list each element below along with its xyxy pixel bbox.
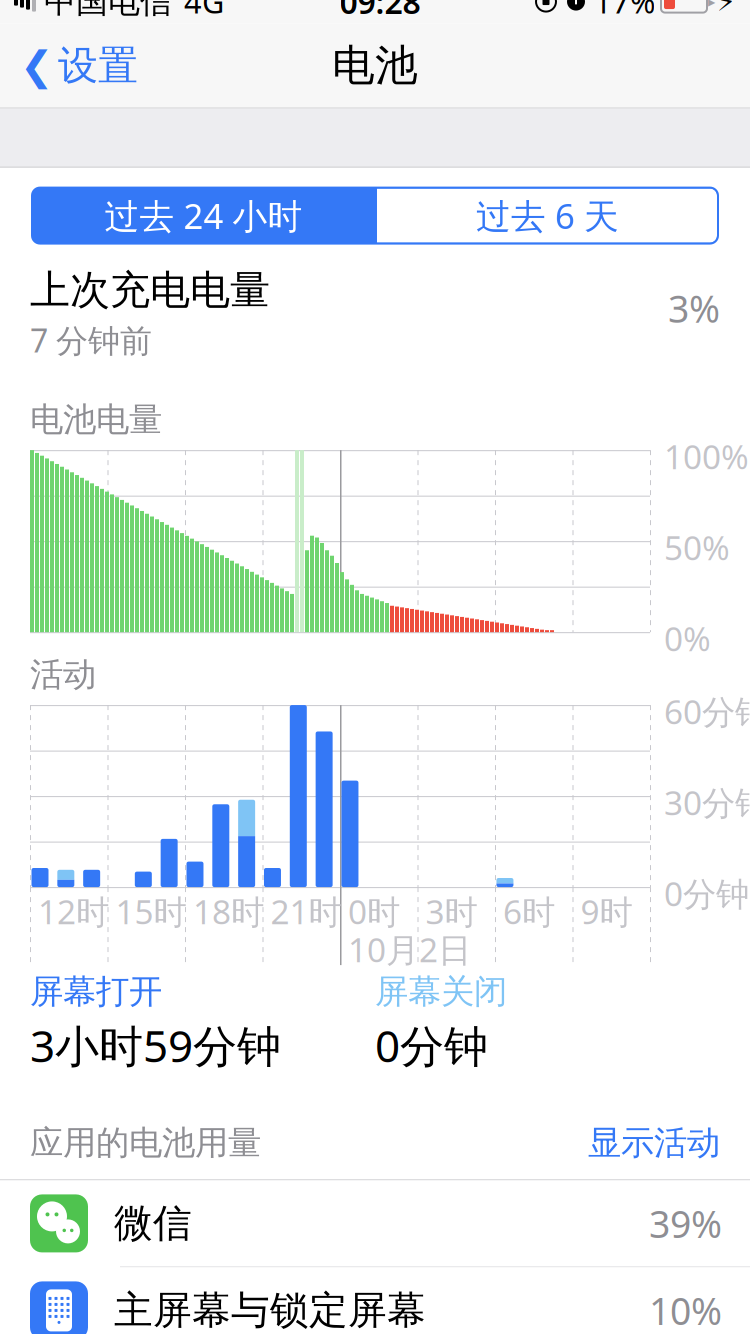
staticText: 7 分钟前 bbox=[30, 319, 152, 361]
staticText: 应用的电池用量 bbox=[30, 1122, 261, 1163]
button[interactable]: 过去 6 天 bbox=[377, 188, 718, 244]
staticText: 10月2日 bbox=[348, 927, 471, 971]
staticText: 过去 6 天 bbox=[476, 193, 619, 239]
staticText: 0分钟 bbox=[375, 1016, 488, 1074]
staticText: 过去 24 小时 bbox=[104, 193, 302, 239]
staticText: 电池电量 bbox=[30, 399, 162, 440]
button[interactable]: 主屏幕与锁定屏幕 bbox=[0, 1267, 750, 1334]
staticText: 0% bbox=[664, 616, 711, 660]
staticText: 显示活动 bbox=[588, 1122, 720, 1163]
button[interactable]: 显示活动 bbox=[580, 1118, 720, 1167]
staticText: 15时 bbox=[115, 889, 186, 933]
staticText: 18时 bbox=[193, 889, 264, 933]
staticText: ▸ bbox=[708, 0, 715, 10]
staticText: 39% bbox=[649, 1199, 722, 1248]
button[interactable]: 过去 24 小时 bbox=[32, 188, 375, 244]
staticText: 21时 bbox=[270, 889, 341, 933]
staticText: 微信 bbox=[114, 1200, 192, 1247]
staticText: 屏幕打开 bbox=[30, 971, 162, 1012]
staticText: 主屏幕与锁定屏幕 bbox=[114, 1287, 426, 1334]
staticText: 上次充电电量 bbox=[30, 266, 270, 315]
staticText: 100% bbox=[664, 434, 749, 478]
staticText: 4G bbox=[184, 0, 224, 22]
staticText: 60分钟 bbox=[664, 689, 750, 733]
staticText: 30分钟 bbox=[664, 780, 750, 824]
button[interactable]: ❮ bbox=[10, 33, 148, 98]
staticText: 10% bbox=[649, 1286, 722, 1334]
staticText: 09:28 bbox=[339, 0, 420, 23]
staticText: 电池 bbox=[332, 39, 418, 92]
button[interactable]: 微信 bbox=[0, 1180, 750, 1267]
staticText: 设置 bbox=[58, 41, 138, 90]
staticText: ❮ bbox=[20, 43, 54, 88]
staticText: 中国电信 bbox=[44, 0, 172, 21]
staticText: 6时 bbox=[503, 889, 555, 933]
staticText: 0时 bbox=[348, 889, 400, 933]
staticText: 0分钟 bbox=[664, 871, 749, 915]
staticText: 17% bbox=[594, 0, 655, 22]
staticText: 3% bbox=[668, 284, 720, 333]
staticText: 12时 bbox=[38, 889, 109, 933]
staticText: ⚡︎ bbox=[717, 0, 736, 17]
staticText: 活动 bbox=[30, 654, 96, 695]
staticText: 9时 bbox=[580, 889, 632, 933]
staticText: 3小时59分钟 bbox=[30, 1016, 281, 1074]
staticText: 3时 bbox=[425, 889, 477, 933]
staticText: 50% bbox=[664, 525, 730, 569]
staticText: 屏幕关闭 bbox=[375, 971, 507, 1012]
